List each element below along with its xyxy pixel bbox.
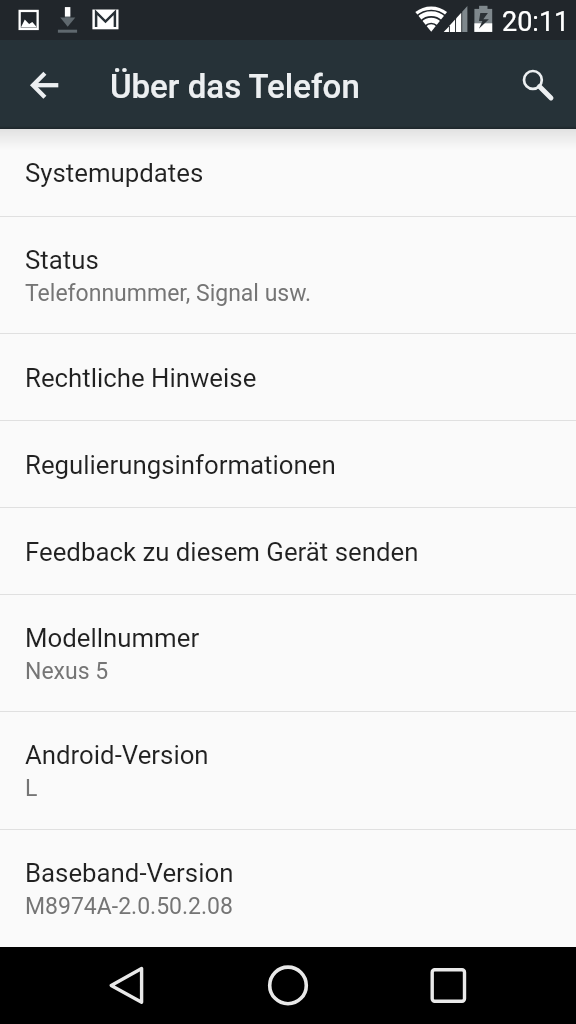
staticText: Über das Telefon [110,67,360,106]
button[interactable]: Rechtliche Hinweise [0,334,576,420]
button[interactable]: Status [0,217,576,333]
staticText: Modellnummer [25,623,200,653]
button[interactable]: Startbildschirm [250,948,326,1024]
button[interactable]: Systemupdates [0,129,576,216]
staticText: Feedback zu diesem Gerät senden [25,537,419,567]
staticText: Telefonnummer, Signal usw. [25,280,312,307]
button[interactable]: Zurück [17,57,73,113]
button[interactable]: Regulierungsinformationen [0,421,576,507]
button[interactable]: Modellnummer [0,595,576,711]
button[interactable]: Zurück [88,948,164,1024]
button[interactable]: Feedback zu diesem Gerät senden [0,508,576,594]
button[interactable]: Baseband-Version [0,830,576,947]
staticText: Nexus 5 [25,658,109,685]
staticText: Android-Version [25,740,209,770]
staticText: Rechtliche Hinweise [25,363,257,393]
staticText: 20:11 [502,6,570,38]
button[interactable]: Android-Version [0,712,576,829]
staticText: Status [25,245,99,275]
staticText: M8974A-2.0.50.2.08 [25,893,233,920]
staticText: Regulierungsinformationen [25,450,336,480]
staticText: L [25,775,38,802]
button[interactable]: Übersicht [412,948,488,1024]
staticText: Baseband-Version [25,858,234,888]
button[interactable]: Suchen [510,57,566,113]
staticText: Systemupdates [25,158,204,188]
